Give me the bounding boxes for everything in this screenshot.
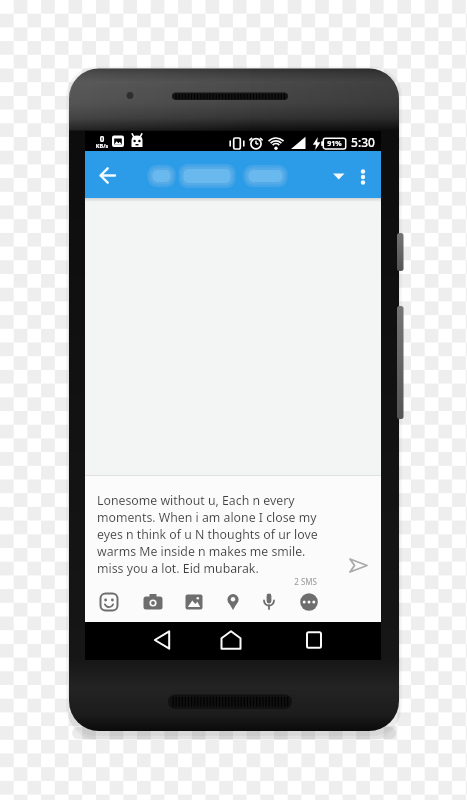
staticText: 0	[96, 133, 108, 142]
button[interactable]	[181, 589, 207, 615]
button[interactable]	[294, 622, 334, 660]
staticText: 2 SMS	[287, 576, 317, 588]
button[interactable]: Lonesome without u, Each n every moments…	[93, 490, 355, 582]
button[interactable]	[341, 551, 375, 579]
button[interactable]	[211, 622, 251, 660]
button[interactable]	[93, 161, 123, 191]
button[interactable]	[141, 159, 355, 193]
button[interactable]	[142, 622, 182, 660]
button[interactable]	[256, 589, 282, 615]
button[interactable]	[220, 589, 246, 615]
button[interactable]	[96, 589, 122, 615]
staticText: 91%	[327, 139, 342, 149]
staticText: KB/s	[93, 142, 111, 150]
button[interactable]	[296, 589, 322, 615]
staticText: 5:30	[351, 134, 375, 150]
button[interactable]	[351, 159, 377, 193]
staticText: Lonesome without u, Each n every moments…	[97, 492, 318, 577]
button[interactable]	[140, 589, 166, 615]
